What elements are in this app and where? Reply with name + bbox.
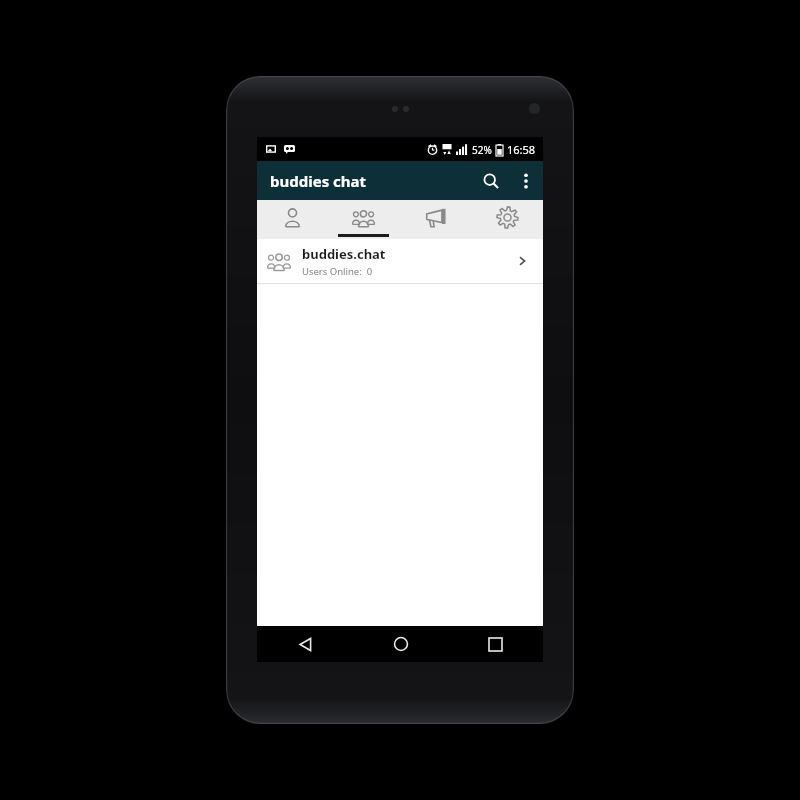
button[interactable]: Groups <box>328 200 399 239</box>
button[interactable]: Home <box>353 626 448 662</box>
other: Open <box>511 250 533 272</box>
button[interactable]: Recent apps <box>448 626 543 662</box>
button[interactable]: Contacts <box>257 200 328 239</box>
staticText: buddies chat <box>270 171 367 191</box>
staticText: buddies.chat <box>302 245 386 263</box>
button[interactable]: Broadcast <box>399 200 471 239</box>
staticText: 16:58 <box>507 142 536 157</box>
staticText: 52% <box>472 143 492 157</box>
button[interactable]: More options <box>509 164 543 198</box>
button[interactable]: Back <box>257 626 353 662</box>
button[interactable]: Settings <box>471 200 543 239</box>
staticText: Users Online: 0 <box>302 265 373 278</box>
button[interactable]: Search <box>473 163 509 199</box>
button[interactable]: buddies.chat <box>257 239 543 283</box>
